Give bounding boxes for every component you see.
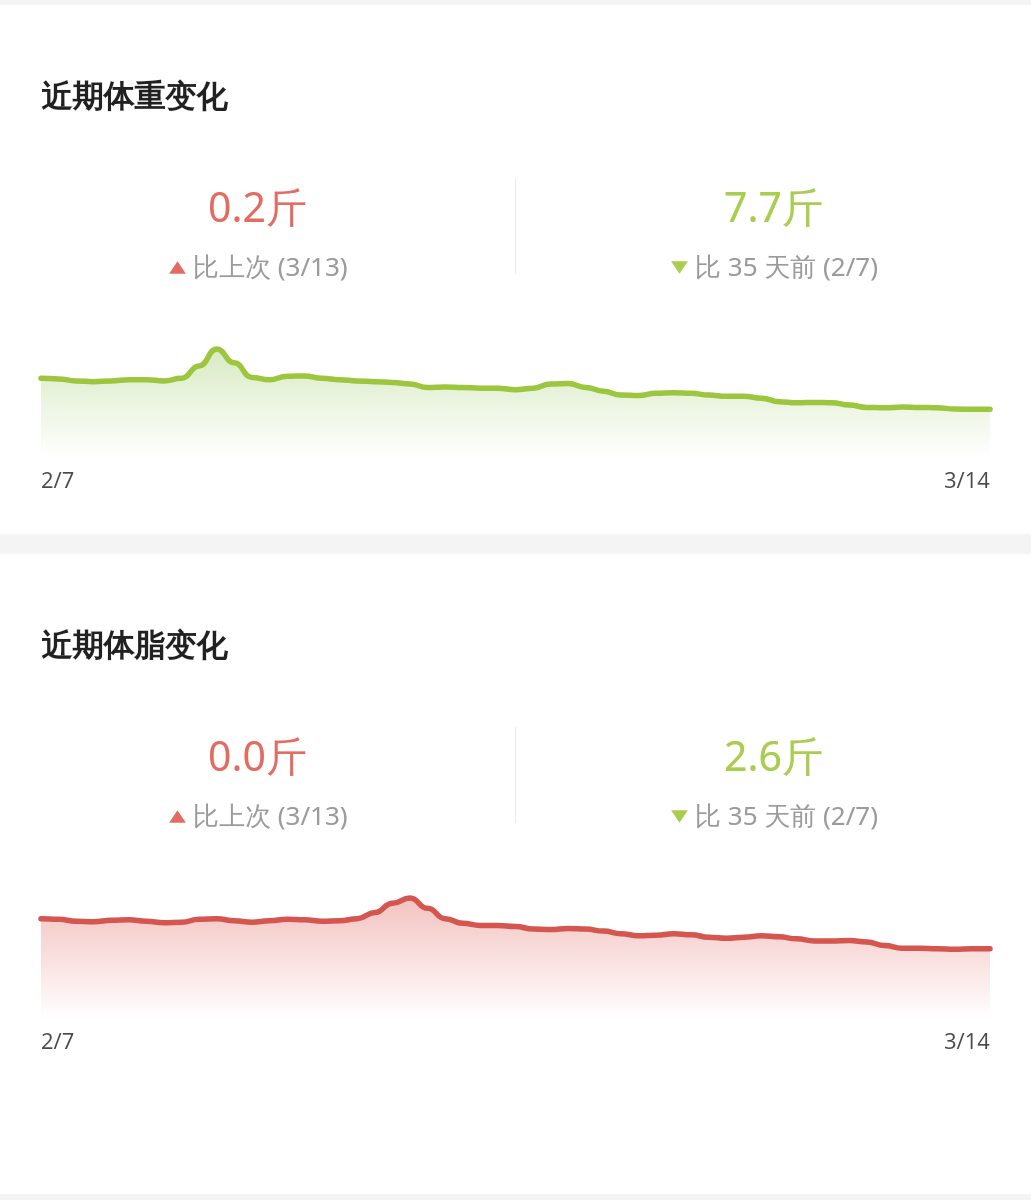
button[interactable]: 7.7斤 <box>516 178 1031 284</box>
staticText: 0.0斤 <box>208 727 307 783</box>
button[interactable]: 0.0斤 <box>0 727 515 833</box>
button[interactable]: 近期体重变化 <box>0 5 1031 534</box>
button[interactable]: 2.6斤 <box>516 727 1031 833</box>
staticText: 近期体重变化 <box>41 77 227 116</box>
button[interactable]: 0.2斤 <box>0 178 515 284</box>
other: Decrease <box>669 805 690 826</box>
staticText: 2/7 <box>41 1025 75 1055</box>
staticText: 3/14 <box>944 464 990 494</box>
staticText: 近期体脂变化 <box>41 626 227 665</box>
button[interactable]: 近期体脂变化 <box>0 554 1031 1095</box>
other: Increase <box>167 805 188 826</box>
staticText: 0.2斤 <box>208 178 307 234</box>
staticText: 2/7 <box>41 464 75 494</box>
staticText: 2.6斤 <box>724 727 823 783</box>
staticText: 3/14 <box>944 1025 990 1055</box>
staticText: 比 35 天前 (2/7) <box>695 248 879 284</box>
other: Decrease <box>669 256 690 277</box>
other: Increase <box>167 256 188 277</box>
staticText: 比上次 (3/13) <box>193 797 348 833</box>
staticText: 比上次 (3/13) <box>193 248 348 284</box>
staticText: 7.7斤 <box>724 178 823 234</box>
staticText: 比 35 天前 (2/7) <box>695 797 879 833</box>
